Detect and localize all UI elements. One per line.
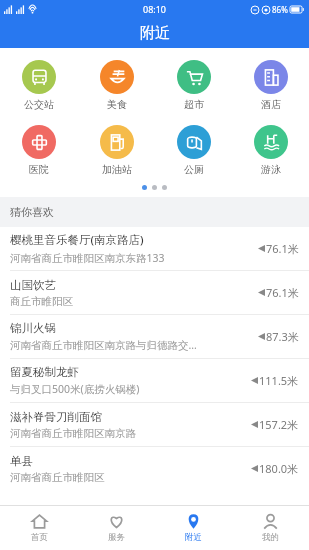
staticText: 山国饮艺: [10, 278, 56, 292]
button[interactable]: 酒店: [232, 56, 309, 115]
button[interactable]: 单县: [0, 447, 309, 490]
staticText: 首页: [31, 532, 48, 543]
staticText: 游泳: [261, 163, 281, 176]
button[interactable]: 滋补脊骨刀削面馆: [0, 403, 309, 446]
staticText: 美食: [107, 98, 127, 111]
button[interactable]: 山国饮艺: [0, 271, 309, 314]
staticText: 76.1米: [266, 241, 299, 256]
staticText: 医院: [29, 163, 49, 176]
staticText: 与归叉口500米(底捞火锅楼): [10, 382, 140, 396]
staticText: 公交站: [24, 98, 54, 111]
staticText: 单县: [10, 454, 33, 468]
staticText: 86%: [272, 4, 288, 15]
staticText: 河南省商丘市睢阳区南京东路133: [10, 251, 165, 265]
staticText: 猜你喜欢: [10, 205, 54, 219]
button[interactable]: 美食: [78, 56, 155, 115]
button[interactable]: 公交站: [0, 56, 78, 115]
staticText: 公厕: [184, 163, 204, 176]
button[interactable]: 留夏秘制龙虾: [0, 359, 309, 402]
button[interactable]: 公厕: [155, 121, 232, 180]
staticText: 河南省商丘市睢阳区南京路: [10, 427, 136, 440]
button[interactable]: 我的: [232, 506, 309, 550]
staticText: 180.0米: [259, 461, 299, 476]
staticText: 我的: [262, 532, 279, 543]
button[interactable]: 首页: [0, 506, 78, 550]
button[interactable]: 附近: [155, 506, 232, 550]
button[interactable]: 樱桃里音乐餐厅(南京路店): [0, 227, 309, 270]
staticText: 附近: [140, 24, 170, 43]
staticText: 河南省商丘市睢阳区: [10, 471, 105, 484]
button[interactable]: 超市: [155, 56, 232, 115]
staticText: 超市: [184, 98, 204, 111]
staticText: 服务: [108, 532, 125, 543]
staticText: 锦川火锅: [10, 321, 56, 335]
staticText: 87.3米: [266, 329, 299, 344]
staticText: 附近: [185, 532, 202, 543]
staticText: 111.5米: [259, 373, 299, 388]
staticText: 76.1米: [266, 285, 299, 300]
button[interactable]: 游泳: [232, 121, 309, 180]
staticText: 河南省商丘市睢阳区南京路与归德路交…: [10, 338, 197, 352]
staticText: 157.2米: [259, 417, 299, 432]
button[interactable]: 医院: [0, 121, 78, 180]
staticText: 08:10: [143, 3, 167, 15]
staticText: 商丘市睢阳区: [10, 295, 73, 308]
staticText: 酒店: [261, 98, 281, 111]
staticText: 滋补脊骨刀削面馆: [10, 410, 102, 424]
staticText: 留夏秘制龙虾: [10, 365, 79, 379]
button[interactable]: 锦川火锅: [0, 315, 309, 358]
staticText: 樱桃里音乐餐厅(南京路店): [10, 232, 144, 248]
staticText: 加油站: [102, 163, 132, 176]
button[interactable]: 服务: [78, 506, 155, 550]
button[interactable]: 加油站: [78, 121, 155, 180]
